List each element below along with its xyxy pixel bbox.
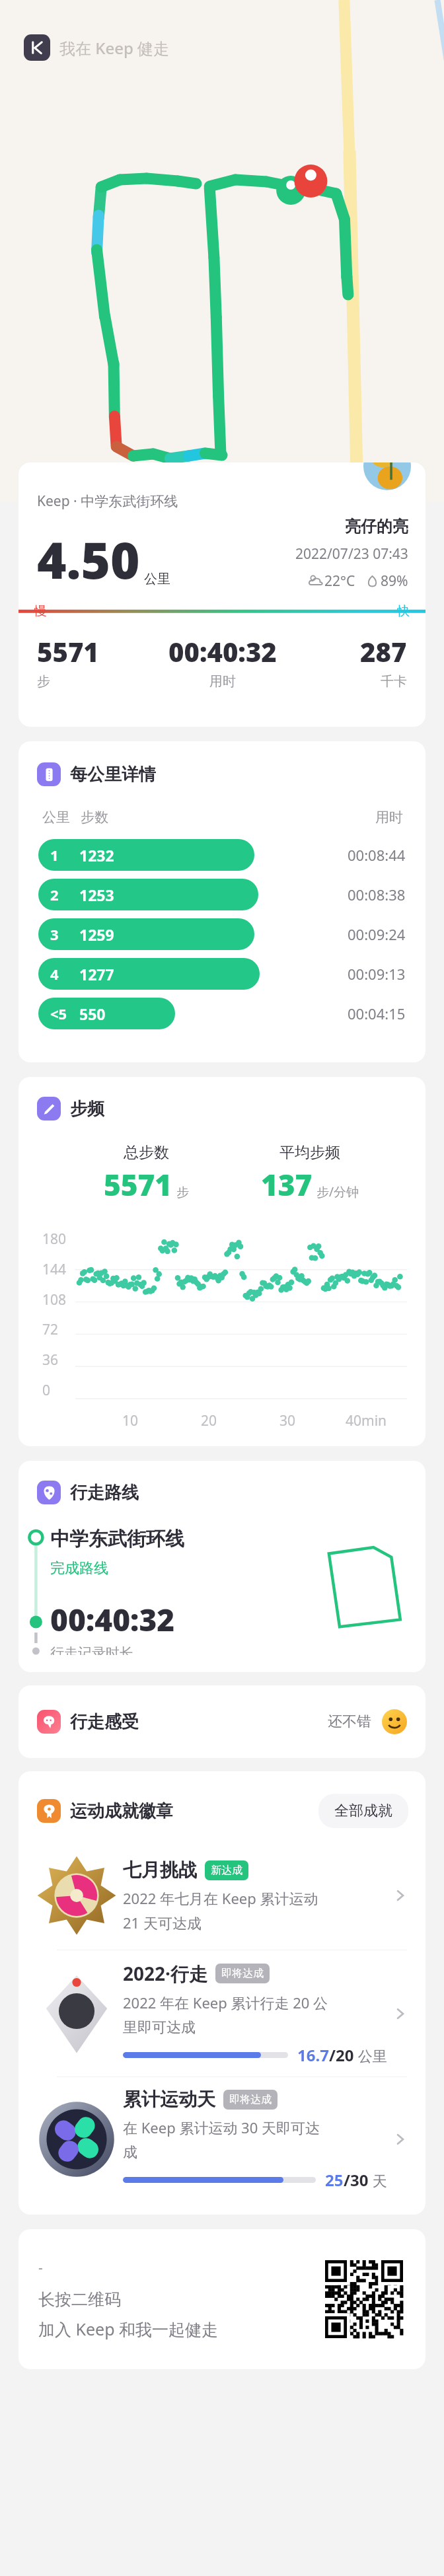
staticText: 平均步频: [279, 1143, 340, 1162]
staticText: 七月挑战: [123, 1858, 197, 1882]
staticText: 即将达成: [221, 1967, 264, 1980]
staticText: 550: [79, 1004, 106, 1024]
staticText: 89%: [381, 571, 408, 591]
staticText: 180: [42, 1230, 67, 1249]
staticText: Keep · 中学东武街环线: [37, 492, 178, 511]
staticText: /20: [329, 2044, 354, 2066]
staticText: 4: [50, 964, 59, 984]
staticText: 5571: [104, 1165, 172, 1204]
staticText: 步/分钟: [316, 1183, 359, 1200]
staticText: 2: [50, 885, 59, 904]
staticText: 慢: [34, 603, 47, 619]
staticText: 用时: [375, 809, 403, 826]
staticText: 1253: [79, 885, 114, 905]
staticText: 00:08:38: [348, 885, 406, 904]
staticText: 加入 Keep 和我一起健走: [38, 2318, 219, 2340]
staticText: <5: [50, 1004, 67, 1023]
staticText: 全部成就: [334, 1802, 392, 1820]
staticText: 16.7: [297, 2044, 329, 2066]
other: 二维码: [325, 2260, 403, 2338]
staticText: 中学东武街环线: [50, 1527, 184, 1551]
staticText: 长按二维码: [38, 2289, 121, 2310]
staticText: 千卡: [381, 673, 407, 690]
staticText: 快: [397, 603, 410, 619]
staticText: 在 Keep 累计运动 30 天即可达 成: [123, 2117, 320, 2161]
button[interactable]: 七月挑战: [18, 1841, 425, 1950]
other: 查看徽章详情: [391, 1886, 410, 1905]
staticText: 行走感受: [70, 1711, 139, 1733]
staticText: 00:09:24: [348, 924, 406, 944]
button[interactable]: 行走感受: [18, 1685, 425, 1758]
staticText: 0: [42, 1381, 51, 1400]
staticText: 40min: [346, 1411, 387, 1430]
staticText: 00:08:44: [348, 845, 406, 865]
button[interactable]: 2022·行走: [18, 1950, 425, 2077]
staticText: 还不错: [328, 1712, 371, 1731]
staticText: 每公里详情: [70, 764, 156, 786]
staticText: 1259: [79, 924, 114, 945]
staticText: 天: [369, 2170, 387, 2190]
staticText: 3: [50, 924, 59, 944]
staticText: 00:04:15: [348, 1004, 406, 1023]
staticText: 即将达成: [229, 2093, 272, 2106]
staticText: 公里: [354, 2045, 387, 2065]
staticText: 30: [279, 1411, 296, 1430]
staticText: /30: [344, 2169, 369, 2191]
staticText: 5571: [37, 634, 99, 669]
staticText: 公里: [144, 571, 170, 587]
staticText: 步数: [81, 809, 108, 826]
staticText: 20: [201, 1411, 217, 1430]
staticText: 行走记录时长: [50, 1644, 133, 1655]
other: 查看徽章详情: [391, 2005, 410, 2023]
staticText: 公里: [42, 809, 70, 826]
staticText: 108: [42, 1290, 67, 1309]
staticText: 1: [50, 845, 59, 865]
staticText: 25: [325, 2169, 344, 2191]
staticText: 22°C: [324, 571, 355, 591]
staticText: 00:40:32: [50, 1599, 175, 1640]
staticText: 运动成就徽章: [70, 1800, 173, 1822]
staticText: 00:40:32: [168, 634, 277, 669]
staticText: 10: [122, 1411, 139, 1430]
staticText: 4.50: [37, 525, 140, 594]
staticText: 新达成: [211, 1864, 242, 1877]
staticText: 完成路线: [50, 1559, 108, 1578]
staticText: 2022/07/23 07:43: [295, 544, 408, 564]
staticText: 累计运动天: [123, 2088, 215, 2111]
button[interactable]: 累计运动天: [18, 2077, 425, 2201]
staticText: 行走路线: [70, 1482, 139, 1504]
staticText: -: [38, 2258, 43, 2277]
staticText: 00:09:13: [348, 964, 406, 984]
staticText: 步: [176, 1185, 189, 1200]
staticText: 137: [261, 1165, 313, 1204]
staticText: 我在 Keep 健走: [59, 37, 170, 59]
staticText: 用时: [209, 673, 236, 690]
staticText: 亮仔的亮: [345, 517, 408, 536]
staticText: 步: [37, 673, 50, 690]
staticText: 2022·行走: [123, 1961, 207, 1986]
other: 查看徽章详情: [391, 2130, 410, 2149]
staticText: 72: [42, 1320, 59, 1339]
staticText: 总步数: [124, 1143, 169, 1162]
staticText: 2022 年七月在 Keep 累计运动 21 天可达成: [123, 1888, 318, 1933]
staticText: 144: [42, 1260, 67, 1279]
staticText: 1232: [79, 845, 114, 865]
button[interactable]: 全部成就: [318, 1794, 408, 1828]
staticText: 36: [42, 1350, 59, 1370]
staticText: 2022 年在 Keep 累计行走 20 公 里即可达成: [123, 1993, 328, 2036]
staticText: 287: [360, 634, 407, 669]
staticText: 步频: [70, 1098, 104, 1120]
staticText: 1277: [79, 964, 114, 984]
